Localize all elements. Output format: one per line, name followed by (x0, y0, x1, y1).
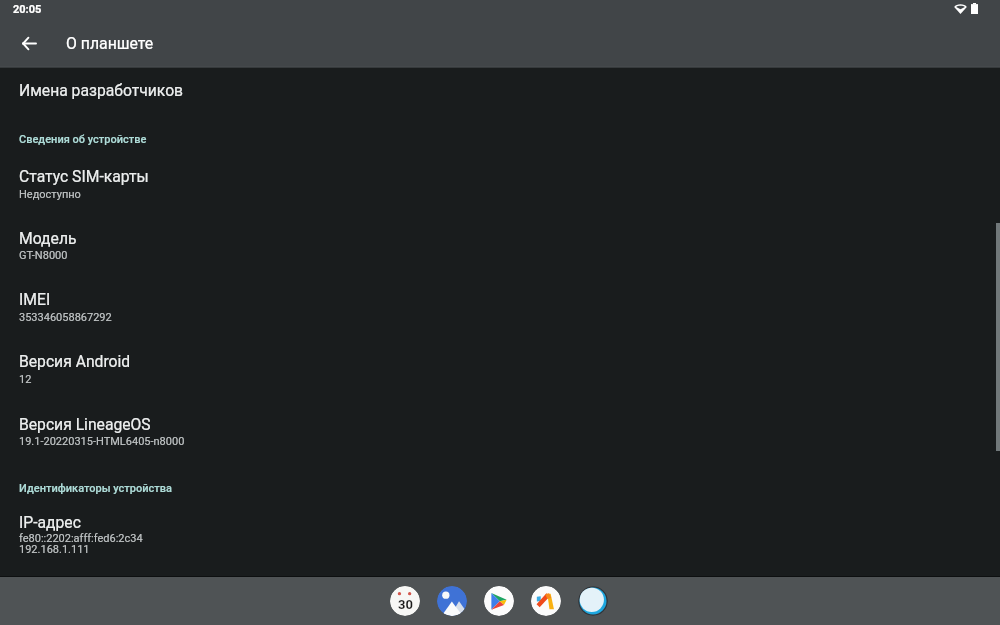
staticText: IMEI (19, 290, 51, 308)
button[interactable]: Модель (0, 223, 1000, 281)
staticText: Недоступно (19, 188, 81, 201)
button[interactable]: Галерея (437, 586, 467, 616)
button[interactable]: Назад (9, 23, 49, 63)
button[interactable]: Настройки (578, 586, 608, 616)
button[interactable]: IP-адрес (0, 507, 1000, 575)
staticText: О планшете (66, 34, 154, 53)
staticText: Имена разработчиков (19, 81, 184, 99)
staticText: 19.1-20220315-HTML6405-n8000 (19, 435, 185, 448)
staticText: Версия Android (19, 352, 131, 370)
staticText: 30 (398, 597, 413, 612)
staticText: 12 (19, 373, 32, 386)
staticText: Идентификаторы устройства (19, 482, 173, 495)
button[interactable]: Календарь (390, 586, 420, 616)
button[interactable]: Статус SIM-карты (0, 161, 1000, 219)
staticText: Версия LineageOS (19, 415, 151, 433)
staticText: fe80::2202:afff:fed6:2c34 (19, 532, 143, 545)
button[interactable]: Play Маркет (484, 586, 514, 616)
staticText: Статус SIM-карты (19, 167, 149, 185)
button[interactable]: IMEI (0, 284, 1000, 342)
button[interactable]: Имена разработчиков (0, 75, 1000, 122)
staticText: IP-адрес (19, 513, 81, 531)
staticText: 353346058867292 (19, 311, 112, 324)
staticText: GT-N8000 (19, 249, 68, 262)
button[interactable]: Аналитика (531, 586, 561, 616)
staticText: 192.168.1.111 (19, 543, 90, 556)
staticText: 20:05 (13, 3, 42, 16)
button[interactable]: Версия Android (0, 346, 1000, 404)
staticText: Сведения об устройстве (19, 133, 147, 146)
button[interactable]: Версия LineageOS (0, 409, 1000, 467)
staticText: Модель (19, 229, 77, 247)
